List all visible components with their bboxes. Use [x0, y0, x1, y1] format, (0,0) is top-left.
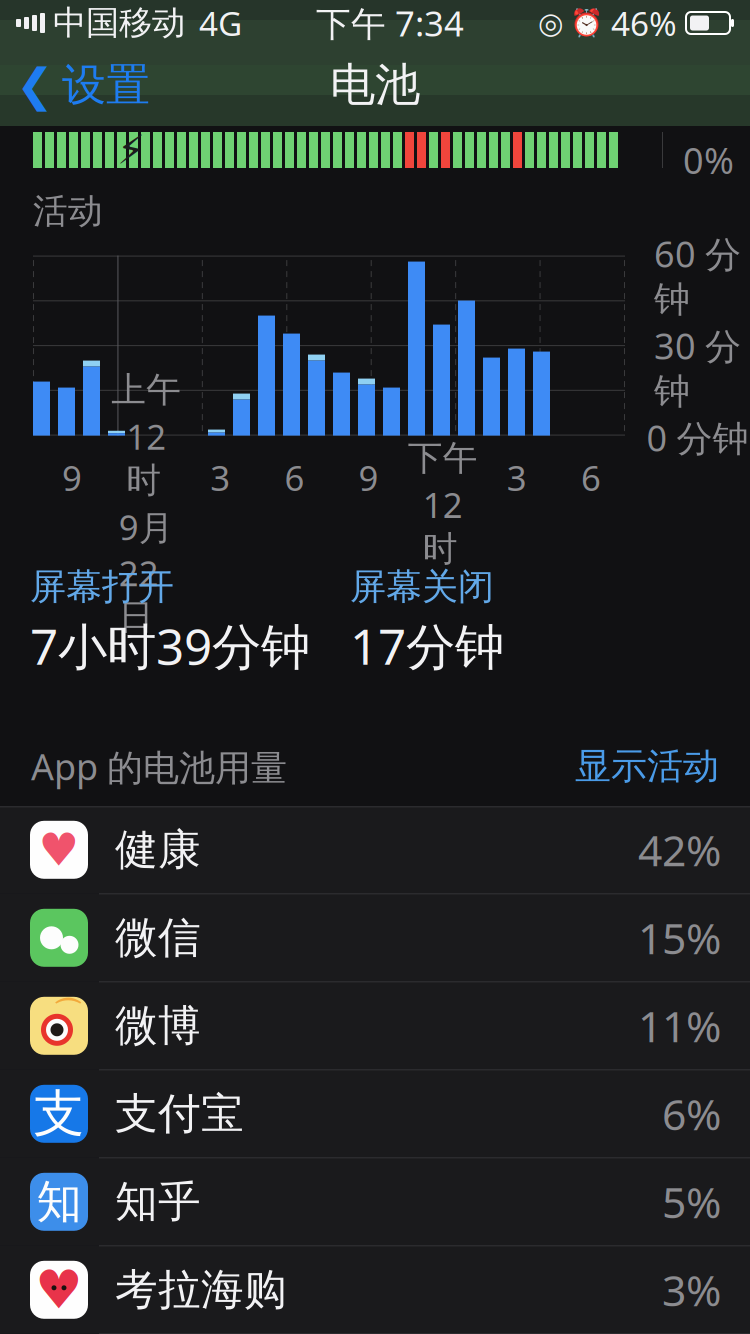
staticText: 电池 — [330, 57, 420, 113]
button[interactable]: 知 — [0, 1157, 750, 1245]
staticText: 活动 — [33, 190, 103, 233]
button[interactable]: 支 — [0, 1069, 750, 1157]
staticText: 上午 — [111, 369, 181, 411]
staticText: ♥ — [35, 1259, 83, 1320]
staticText: 知乎 — [115, 1176, 201, 1228]
staticText: 知 — [36, 1174, 81, 1230]
staticText: 42% — [638, 821, 721, 878]
staticText: 屏幕关闭 — [350, 565, 494, 609]
staticText: ◎ — [538, 6, 564, 40]
staticText: 屏幕打开 — [30, 565, 174, 609]
staticText: 46% — [611, 1, 677, 45]
staticText: 4G — [199, 1, 242, 45]
staticText: 9 — [358, 455, 378, 501]
staticText: 9 — [62, 455, 82, 501]
staticText: ❮ — [16, 59, 54, 111]
staticText: 中国移动 — [53, 2, 185, 43]
staticText: 3% — [662, 1261, 721, 1318]
button[interactable]: ♥ — [0, 1245, 750, 1333]
staticText: 3 — [210, 455, 230, 501]
button[interactable]: ♥ — [0, 806, 750, 893]
staticText: 0% — [683, 136, 734, 184]
staticText: 6 — [581, 455, 601, 501]
staticText: 6 — [284, 455, 304, 501]
staticText: App 的电池用量 — [31, 742, 287, 790]
staticText: 5% — [662, 1173, 721, 1230]
staticText: ⚡︎ — [117, 127, 145, 173]
staticText: 下午 7:34 — [316, 0, 464, 46]
button[interactable]: 微信 — [0, 893, 750, 981]
staticText: 微博 — [115, 1000, 201, 1052]
staticText: 考拉海购 — [115, 1264, 287, 1316]
staticText: 6% — [662, 1085, 721, 1142]
staticText: 0 分钟 — [646, 414, 748, 461]
staticText: ⏰ — [570, 8, 603, 38]
staticText: 17分钟 — [350, 613, 504, 678]
staticText: ⌒ — [53, 995, 82, 1031]
staticText: 12时 — [423, 482, 463, 570]
staticText: 7小时39分钟 — [30, 613, 310, 678]
staticText: 显示活动 — [575, 744, 719, 788]
staticText: 健康 — [115, 824, 201, 876]
staticText: 30 分钟 — [654, 322, 741, 414]
staticText: 微信 — [115, 912, 201, 964]
staticText: 支付宝 — [115, 1088, 244, 1140]
staticText: 60 分钟 — [654, 230, 741, 322]
staticText: 下午 — [408, 437, 478, 480]
staticText: 设置 — [62, 58, 150, 112]
button[interactable]: ❮ — [0, 45, 166, 125]
staticText: 11% — [638, 997, 721, 1054]
staticText: 3 — [507, 455, 527, 501]
button[interactable]: 显示活动 — [575, 744, 719, 788]
button[interactable]: ⌒ — [0, 981, 750, 1069]
staticText: ♥ — [38, 824, 79, 876]
staticText: 9月22日 — [119, 504, 174, 639]
staticText: 15% — [638, 909, 721, 966]
staticText: 支 — [33, 1083, 84, 1145]
staticText: 12时 — [126, 413, 166, 502]
button[interactable]: 淘 — [0, 1333, 750, 1334]
